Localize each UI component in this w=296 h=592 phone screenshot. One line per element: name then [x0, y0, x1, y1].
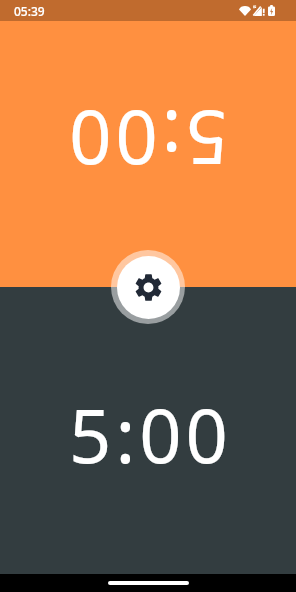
button[interactable]: Settings: [111, 250, 185, 324]
staticText: 05:39: [14, 3, 45, 19]
staticText: 5:00: [65, 89, 228, 190]
staticText: 5:00: [69, 384, 232, 485]
button[interactable]: 5:00: [0, 0, 296, 287]
button[interactable]: 5:00: [0, 287, 296, 574]
